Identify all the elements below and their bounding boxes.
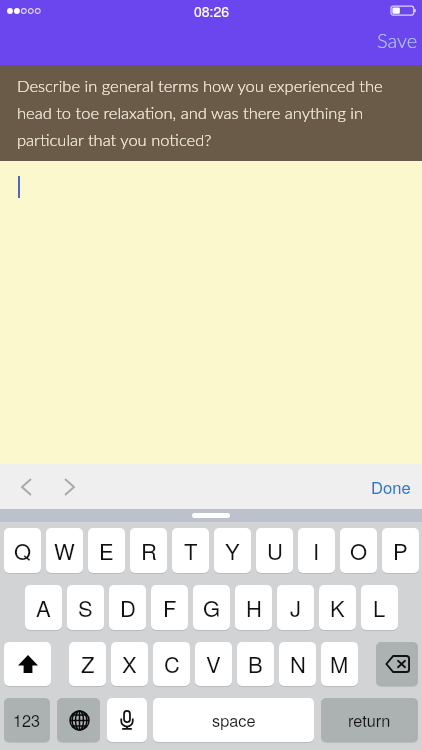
button[interactable]: Next keyboard [57, 698, 100, 742]
button[interactable]: J [277, 585, 314, 630]
button[interactable]: Y [214, 528, 251, 573]
button[interactable]: N [279, 642, 316, 686]
staticText: M [330, 648, 349, 680]
button[interactable]: Shift [4, 642, 51, 686]
staticText: O [350, 535, 368, 567]
button[interactable]: A [25, 585, 62, 630]
staticText: B [248, 648, 263, 680]
button[interactable]: Save [368, 24, 422, 56]
staticText: F [163, 592, 177, 624]
staticText: Done [371, 475, 411, 499]
staticText: X [122, 648, 137, 680]
staticText: C [164, 648, 180, 680]
button[interactable]: V [195, 642, 232, 686]
staticText: T [184, 535, 198, 567]
staticText: W [54, 535, 75, 567]
staticText: P [393, 535, 408, 567]
button[interactable]: S [67, 585, 104, 630]
button[interactable]: H [235, 585, 272, 630]
button[interactable]: G [193, 585, 230, 630]
staticText: E [99, 535, 114, 567]
button[interactable]: X [111, 642, 148, 686]
button[interactable]: 123 [4, 698, 50, 742]
staticText: return [348, 708, 391, 731]
button[interactable]: I [298, 528, 335, 573]
button[interactable]: Dictate [107, 698, 147, 742]
button[interactable]: return [321, 698, 418, 742]
staticText: 123 [13, 708, 41, 731]
button[interactable]: Done [360, 465, 422, 509]
button[interactable]: O [340, 528, 377, 573]
staticText: A [36, 592, 51, 624]
button[interactable]: C [153, 642, 190, 686]
button[interactable]: P [382, 528, 419, 573]
button[interactable]: M [321, 642, 358, 686]
staticText: Describe in general terms how you experi… [17, 76, 383, 150]
staticText: U [267, 535, 283, 567]
button[interactable]: L [361, 585, 398, 630]
button[interactable]: E [88, 528, 125, 573]
button[interactable]: Q [4, 528, 41, 573]
button[interactable]: Previous field [12, 464, 40, 509]
button[interactable]: Next field [55, 464, 83, 509]
button[interactable]: Z [69, 642, 106, 686]
staticText: G [203, 592, 221, 624]
staticText: S [78, 592, 93, 624]
button[interactable]: K [319, 585, 356, 630]
staticText: R [141, 535, 157, 567]
button[interactable]: space [153, 698, 314, 742]
staticText: Q [14, 535, 32, 567]
staticText: Y [225, 535, 240, 567]
staticText: D [120, 592, 136, 624]
button[interactable]: B [237, 642, 274, 686]
button[interactable]: Backspace [376, 642, 418, 686]
staticText: V [206, 648, 221, 680]
staticText: H [246, 592, 262, 624]
staticText: Z [81, 648, 95, 680]
staticText: J [290, 592, 302, 624]
button[interactable]: U [256, 528, 293, 573]
button[interactable]: R [130, 528, 167, 573]
button[interactable]: Answer text field [0, 161, 422, 464]
staticText: K [330, 592, 345, 624]
staticText: Save [377, 28, 418, 52]
staticText: N [290, 648, 306, 680]
button[interactable]: T [172, 528, 209, 573]
button[interactable]: F [151, 585, 188, 630]
button[interactable]: D [109, 585, 146, 630]
staticText: 08:26 [194, 1, 230, 21]
staticText: L [373, 592, 386, 624]
button[interactable]: W [46, 528, 83, 573]
staticText: space [212, 708, 256, 731]
staticText: I [313, 535, 320, 567]
